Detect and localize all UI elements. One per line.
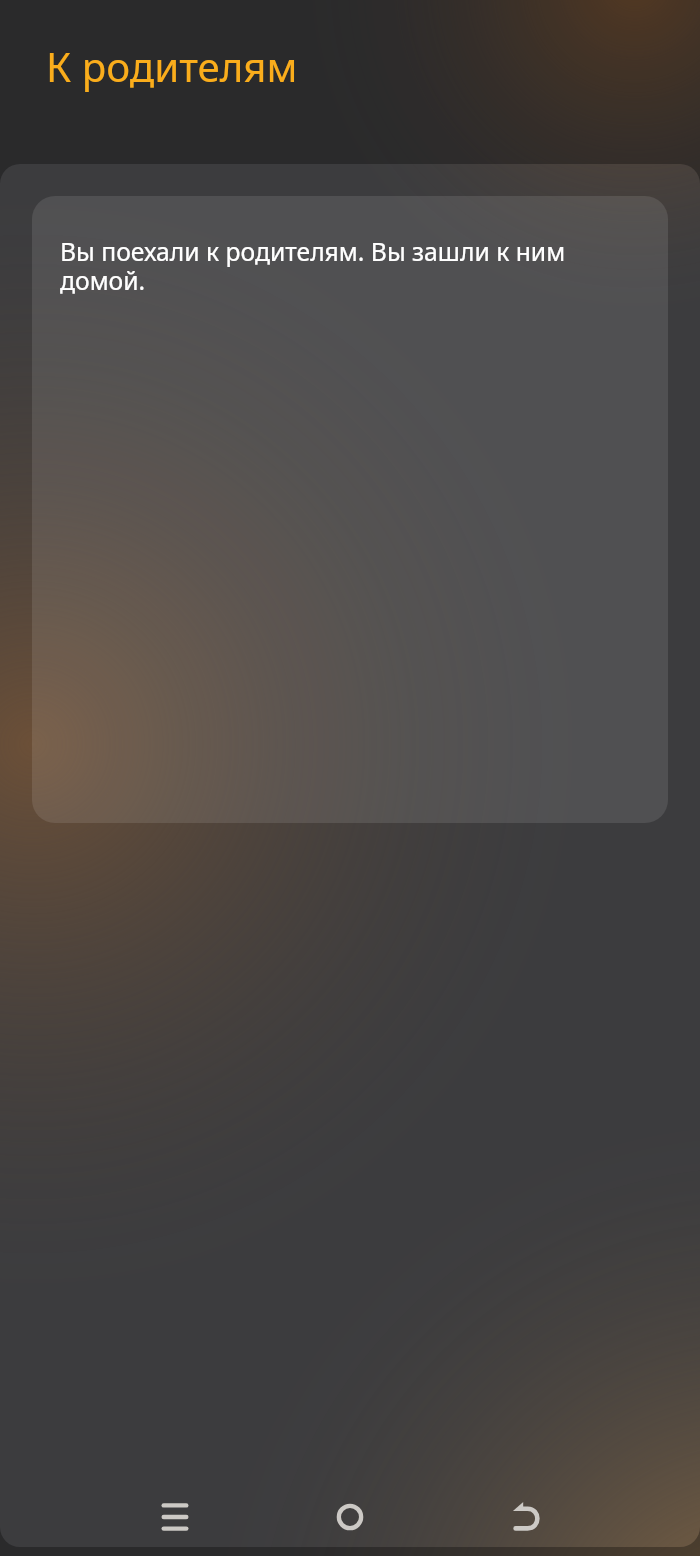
staticText: К родителям <box>46 39 298 94</box>
button[interactable]: Home <box>290 1477 410 1556</box>
button[interactable]: Вы поехали к родителям. Вы зашли к ним д… <box>32 196 668 823</box>
staticText: Вы поехали к родителям. Вы зашли к ним д… <box>60 238 608 296</box>
button[interactable]: Recent apps <box>115 1477 235 1556</box>
button[interactable]: Back <box>466 1478 586 1556</box>
